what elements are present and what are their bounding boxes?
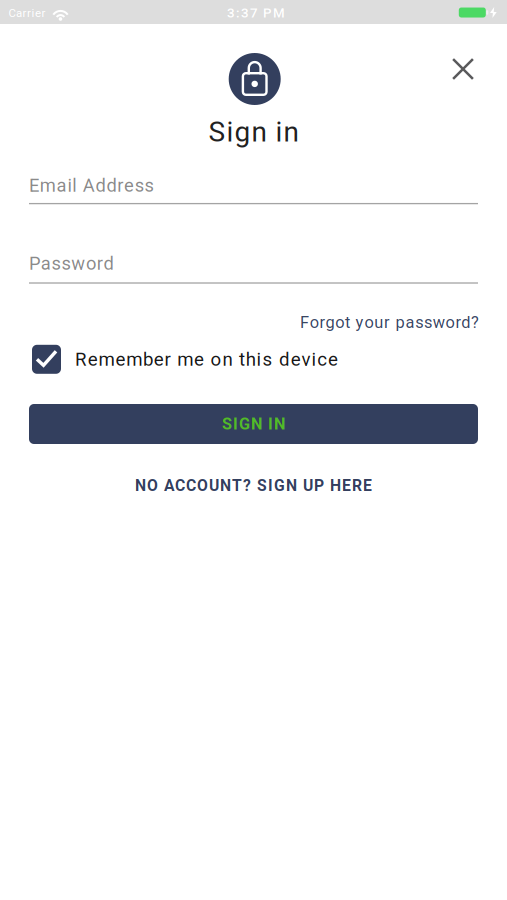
staticText: 3:37 PM bbox=[227, 5, 285, 21]
staticText: SIGN IN bbox=[222, 414, 285, 434]
staticText: NO ACCOUNT? SIGN UP HERE bbox=[135, 476, 372, 495]
staticText: Forgot your password? bbox=[300, 313, 479, 332]
staticText: Remember me on this device bbox=[75, 348, 338, 370]
button[interactable] bbox=[441, 47, 485, 91]
button[interactable]: Remember me on this device bbox=[29, 345, 478, 374]
button[interactable]: Forgot your password? bbox=[269, 313, 479, 332]
staticText: Email Address bbox=[29, 175, 154, 196]
staticText: Password bbox=[29, 253, 114, 274]
staticText: Carrier bbox=[8, 6, 45, 20]
staticText: Sign in bbox=[208, 116, 298, 148]
button[interactable]: NO ACCOUNT? SIGN UP HERE bbox=[93, 476, 413, 495]
button[interactable]: SIGN IN bbox=[29, 404, 478, 444]
